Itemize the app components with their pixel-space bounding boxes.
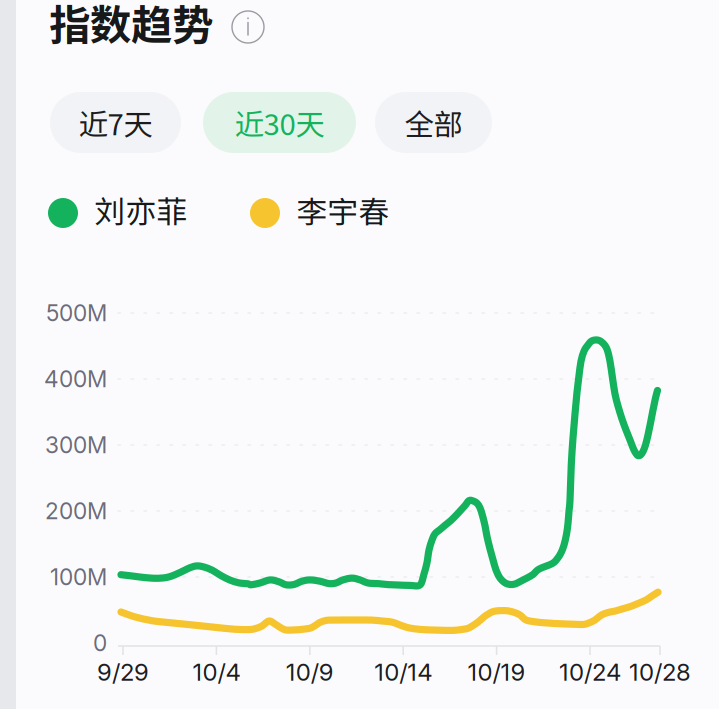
button[interactable]: 李宇春: [0, 0, 719, 709]
staticText: 全部: [404, 101, 462, 144]
staticText: 指数趋势: [49, 0, 213, 52]
staticText: 300M: [45, 431, 107, 459]
staticText: 10/28: [629, 657, 691, 686]
staticText: 0: [93, 629, 107, 657]
staticText: 近7天: [78, 101, 152, 144]
staticText: 10/24: [559, 657, 621, 686]
staticText: 近30天: [234, 101, 324, 144]
staticText: 200M: [45, 497, 107, 525]
button[interactable]: 指数趋势说明: [226, 5, 270, 49]
staticText: 刘亦菲: [94, 188, 187, 232]
staticText: 10/14: [374, 657, 432, 686]
staticText: 10/9: [286, 657, 334, 686]
staticText: 9/29: [97, 657, 149, 686]
staticText: 李宇春: [296, 188, 389, 232]
button[interactable]: 全部: [375, 92, 492, 153]
button[interactable]: 近7天: [50, 92, 181, 153]
staticText: 500M: [46, 299, 107, 327]
staticText: 10/19: [468, 657, 526, 686]
staticText: 10/4: [192, 657, 240, 686]
button[interactable]: 近30天: [203, 92, 356, 153]
staticText: 400M: [44, 365, 107, 393]
staticText: 100M: [50, 563, 107, 591]
button[interactable]: 刘亦菲: [0, 0, 719, 709]
